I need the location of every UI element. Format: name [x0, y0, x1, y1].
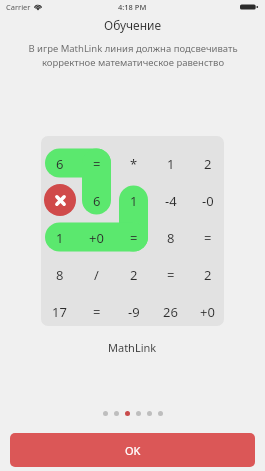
staticText: 4:18 PM: [118, 2, 147, 12]
staticText: 2: [130, 266, 138, 284]
staticText: 1: [130, 192, 138, 210]
staticText: MathLink: [108, 340, 157, 355]
staticText: 6: [56, 155, 64, 173]
button[interactable]: 26: [152, 293, 189, 326]
staticText: =: [130, 229, 138, 247]
staticText: 1: [167, 155, 175, 173]
staticText: В игре MathLink линия должна подсвечиват…: [28, 42, 238, 69]
button[interactable]: =: [78, 293, 115, 326]
staticText: 17: [52, 303, 67, 321]
staticText: 8: [56, 266, 64, 284]
button[interactable]: 2: [115, 256, 152, 293]
staticText: =: [93, 303, 101, 321]
button[interactable]: 6: [41, 145, 78, 182]
button[interactable]: =: [189, 219, 224, 256]
staticText: 2: [204, 266, 212, 284]
staticText: -4: [165, 192, 177, 210]
button[interactable]: 1: [115, 182, 152, 219]
staticText: =: [167, 266, 175, 284]
staticText: -0: [202, 192, 214, 210]
button[interactable]: =: [152, 256, 189, 293]
staticText: +0: [89, 229, 104, 247]
button[interactable]: *: [115, 145, 152, 182]
button[interactable]: +0: [189, 293, 224, 326]
button[interactable]: 8: [41, 256, 78, 293]
staticText: 6: [93, 192, 101, 210]
button[interactable]: -4: [152, 182, 189, 219]
button[interactable]: 2: [189, 145, 224, 182]
button[interactable]: 6: [41, 136, 224, 326]
button[interactable]: 17: [41, 293, 78, 326]
button[interactable]: /: [78, 256, 115, 293]
button[interactable]: -0: [189, 182, 224, 219]
staticText: =: [204, 229, 212, 247]
button[interactable]: 6: [78, 182, 115, 219]
button[interactable]: =: [115, 219, 152, 256]
button[interactable]: Clear: [44, 184, 76, 216]
button[interactable]: 1: [41, 219, 78, 256]
staticText: 2: [204, 155, 212, 173]
button[interactable]: -9: [115, 293, 152, 326]
button[interactable]: 8: [152, 219, 189, 256]
staticText: Обучение: [104, 17, 162, 33]
staticText: 26: [163, 303, 178, 321]
staticText: =: [93, 155, 101, 173]
staticText: *: [130, 155, 138, 173]
staticText: Carrier: [6, 2, 31, 12]
staticText: 8: [167, 229, 175, 247]
button[interactable]: 2: [189, 256, 224, 293]
button[interactable]: =: [78, 145, 115, 182]
staticText: 1: [56, 229, 64, 247]
button[interactable]: +0: [78, 219, 115, 256]
staticText: -9: [128, 303, 140, 321]
staticText: +0: [200, 303, 215, 321]
staticText: OK: [125, 443, 141, 458]
staticText: /: [94, 266, 99, 284]
button[interactable]: 1: [152, 145, 189, 182]
button[interactable]: OK: [10, 433, 255, 467]
